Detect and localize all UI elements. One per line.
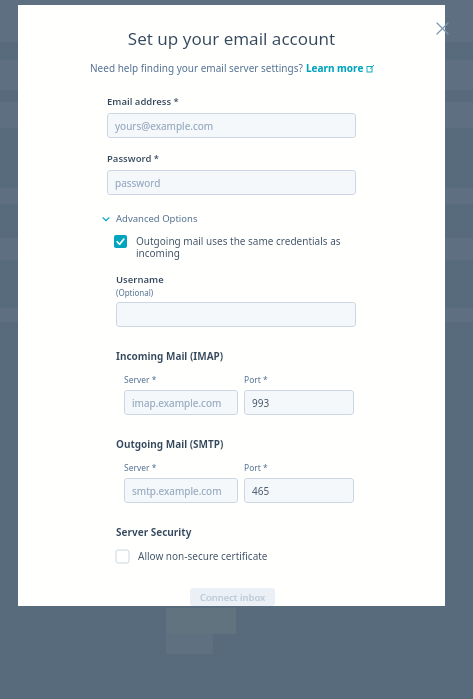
staticText: Port * bbox=[244, 462, 268, 474]
button[interactable]: Allow non-secure certificate bbox=[116, 549, 268, 563]
staticText: Server * bbox=[124, 462, 157, 474]
staticText: Server Security bbox=[116, 525, 192, 539]
staticText: Port * bbox=[244, 374, 268, 386]
staticText: Allow non-secure certificate bbox=[138, 549, 268, 563]
button[interactable]: Advanced Options bbox=[102, 212, 198, 225]
staticText: Password * bbox=[107, 152, 160, 165]
staticText: Outgoing mail uses the same credentials … bbox=[136, 234, 344, 260]
button[interactable]: Connect inbox bbox=[190, 588, 275, 606]
staticText: Username bbox=[116, 273, 164, 286]
button[interactable] bbox=[116, 302, 356, 327]
staticText: (Optional) bbox=[116, 287, 154, 298]
staticText: 993 bbox=[252, 396, 270, 410]
staticText: Set up your email account bbox=[18, 27, 445, 50]
staticText: Learn more bbox=[306, 61, 364, 75]
button[interactable]: smtp.example.com bbox=[124, 478, 238, 503]
button[interactable]: password bbox=[107, 170, 356, 195]
button[interactable]: 465 bbox=[244, 478, 354, 503]
button[interactable]: Learn more bbox=[306, 61, 374, 75]
staticText: smtp.example.com bbox=[132, 484, 222, 498]
button[interactable]: Close bbox=[428, 14, 456, 42]
button[interactable]: yours@example.com bbox=[107, 113, 356, 138]
staticText: password bbox=[115, 176, 161, 190]
button[interactable]: 993 bbox=[244, 390, 354, 415]
staticText: Connect inbox bbox=[200, 591, 266, 604]
staticText: Need help finding your email server sett… bbox=[90, 61, 306, 75]
staticText: Outgoing Mail (SMTP) bbox=[116, 437, 224, 451]
button[interactable]: imap.example.com bbox=[124, 390, 238, 415]
staticText: Incoming Mail (IMAP) bbox=[116, 349, 224, 363]
staticText: Server * bbox=[124, 374, 157, 386]
staticText: Email address * bbox=[107, 95, 179, 108]
staticText: yours@example.com bbox=[115, 119, 214, 133]
button[interactable]: Outgoing mail uses the same credentials … bbox=[114, 234, 344, 260]
staticText: Advanced Options bbox=[116, 212, 198, 225]
staticText: 465 bbox=[252, 484, 270, 498]
staticText: imap.example.com bbox=[132, 396, 222, 410]
